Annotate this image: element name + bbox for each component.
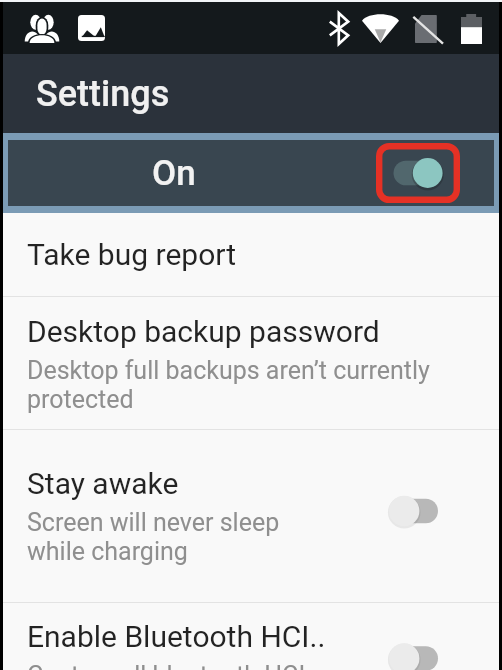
button[interactable]: Enable Bluetooth HCI..: [3, 603, 499, 670]
staticText: Screen will never sleep while charging: [27, 508, 280, 566]
staticText: Desktop backup password: [27, 314, 380, 349]
button[interactable]: Take bug report: [3, 213, 499, 296]
button[interactable]: Stay awake: [3, 430, 499, 602]
button[interactable]: Toggle setting: [392, 647, 442, 670]
button[interactable]: On: [8, 140, 494, 206]
staticText: Settings: [36, 73, 170, 115]
button[interactable]: Desktop backup password: [3, 297, 499, 429]
staticText: Take bug report: [27, 237, 236, 272]
button[interactable]: Toggle setting: [392, 494, 442, 528]
staticText: On: [152, 153, 196, 194]
staticText: Enable Bluetooth HCI..: [27, 619, 326, 654]
button[interactable]: Toggle setting: [376, 143, 460, 203]
staticText: Stay awake: [27, 466, 179, 501]
staticText: Capture all bluetooth HCI..: [27, 661, 319, 670]
staticText: Desktop full backups aren’t currently pr…: [27, 356, 430, 414]
